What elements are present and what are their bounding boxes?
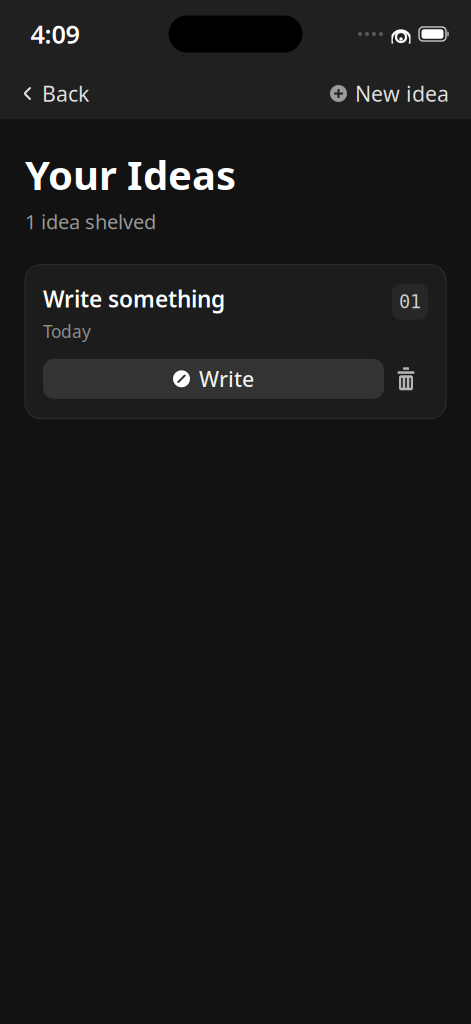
staticText: Write something bbox=[43, 284, 225, 314]
staticText: 1 idea shelved bbox=[25, 208, 156, 235]
button[interactable]: New idea bbox=[308, 69, 471, 118]
button[interactable]: Back bbox=[0, 69, 111, 118]
staticText: New idea bbox=[355, 79, 449, 108]
staticText: 01 bbox=[399, 291, 421, 312]
staticText: Write bbox=[199, 365, 254, 393]
button[interactable]: Delete idea bbox=[384, 359, 428, 399]
staticText: Your Ideas bbox=[25, 148, 236, 201]
button[interactable]: Write bbox=[43, 359, 384, 399]
staticText: Back bbox=[42, 79, 89, 108]
staticText: Today bbox=[43, 320, 91, 343]
staticText: 4:09 bbox=[30, 17, 79, 51]
